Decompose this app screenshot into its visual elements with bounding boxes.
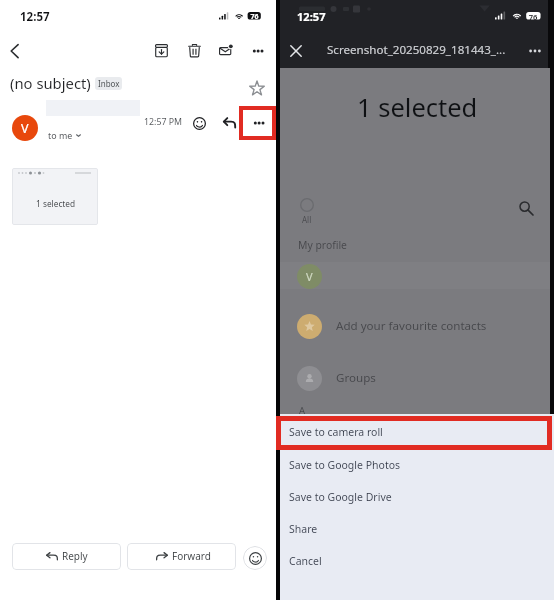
staticText: My profile	[298, 238, 347, 252]
button[interactable]: V	[280, 263, 550, 289]
staticText: Save to camera roll	[289, 425, 383, 439]
staticText: 76	[526, 12, 540, 22]
button[interactable]: Add reaction	[193, 117, 206, 130]
staticText: Add your favourite contacts	[336, 318, 487, 334]
button[interactable]: Reply	[223, 117, 236, 128]
button[interactable]: Mark as unread	[219, 44, 233, 58]
button[interactable]: Groups	[280, 365, 550, 391]
staticText: to me	[48, 129, 73, 141]
button[interactable]: More message actions	[253, 117, 265, 129]
staticText: 12:57	[297, 9, 326, 24]
staticText: Share	[289, 522, 318, 536]
button[interactable]: More options	[252, 45, 264, 57]
button[interactable]: Forward	[127, 543, 236, 570]
staticText: 76	[248, 12, 261, 22]
staticText: 1 selected	[357, 90, 478, 125]
button[interactable]: Emoji reaction	[243, 546, 267, 570]
button[interactable]: Share	[280, 515, 554, 543]
button[interactable]: Save to Google Photos	[280, 451, 554, 479]
staticText: Forward	[172, 549, 211, 563]
button[interactable]: Save to camera roll	[280, 418, 554, 446]
button[interactable]: Save to Google Drive	[280, 483, 554, 511]
staticText: Groups	[336, 370, 376, 386]
staticText: Screenshot_20250829_181443_...	[327, 42, 506, 58]
button[interactable]: All	[300, 198, 314, 212]
staticText: 1 selected	[36, 198, 76, 209]
button[interactable]: More options	[529, 45, 541, 57]
button[interactable]: Archive	[155, 44, 168, 57]
staticText: V	[21, 120, 29, 137]
button[interactable]: Cancel	[280, 547, 554, 575]
button[interactable]: Delete	[188, 44, 201, 57]
staticText: Cancel	[289, 554, 322, 568]
button[interactable]: Search	[519, 201, 534, 216]
button[interactable]: Reply	[12, 543, 121, 570]
button[interactable]: Close	[290, 45, 302, 57]
button[interactable]: 1 selected	[12, 168, 98, 225]
staticText: All	[302, 214, 312, 225]
staticText: 12:57	[20, 9, 50, 25]
button[interactable]: Back	[4, 40, 26, 62]
staticText: Save to Google Photos	[289, 458, 401, 472]
button[interactable]: V	[12, 115, 38, 141]
staticText: (no subject)	[10, 73, 91, 93]
staticText: 12:57 PM	[144, 116, 183, 128]
button[interactable]: Add your favourite contacts	[280, 313, 550, 339]
staticText: A	[299, 404, 306, 417]
staticText: Save to Google Drive	[289, 490, 392, 504]
staticText: Reply	[62, 549, 88, 563]
staticText: V	[306, 269, 313, 284]
button[interactable]: Star	[249, 80, 265, 96]
staticText: Inbox	[98, 78, 120, 89]
